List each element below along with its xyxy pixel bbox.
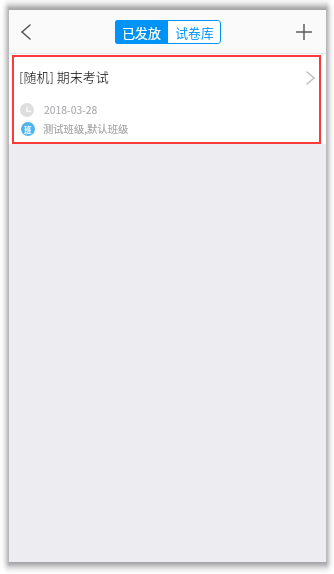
button[interactable]: Back <box>9 10 43 53</box>
staticText: 2018-03-28 <box>44 102 98 117</box>
button[interactable]: 试卷库 <box>168 20 221 44</box>
staticText: 测试班级,默认班级 <box>43 121 129 136</box>
staticText: 班 <box>24 124 32 135</box>
button[interactable]: [随机] 期末考试 <box>9 53 326 144</box>
staticText: 试卷库 <box>175 23 214 42</box>
button[interactable]: 已发放 <box>115 20 168 44</box>
staticText: 已发放 <box>122 23 161 42</box>
staticText: [随机] 期末考试 <box>19 67 109 86</box>
button[interactable]: Add <box>282 10 326 53</box>
